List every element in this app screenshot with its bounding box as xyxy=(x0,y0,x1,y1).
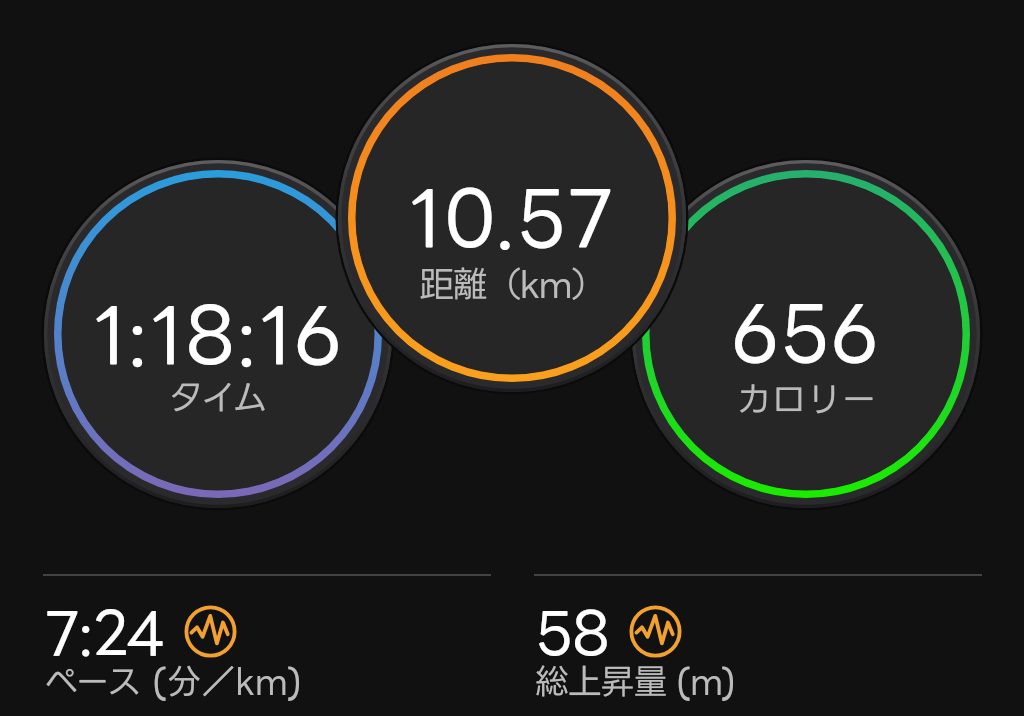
staticText: 58 xyxy=(536,602,610,665)
button[interactable]: Total ascent 58 metres xyxy=(534,574,982,716)
staticText: 総上昇量 (m) xyxy=(535,662,735,699)
button[interactable]: Distance 10.57 km xyxy=(334,40,690,396)
staticText: 10.57 xyxy=(409,177,615,260)
staticText: 656 xyxy=(731,292,881,375)
staticText: タイム xyxy=(168,377,268,415)
staticText: ペース (分／km) xyxy=(44,662,302,699)
staticText: カロリー xyxy=(736,379,877,417)
staticText: 1:18:16 xyxy=(93,294,344,377)
staticText: 7:24 xyxy=(45,602,165,665)
button[interactable]: Calories 656 xyxy=(628,156,984,512)
staticText: 距離（km） xyxy=(419,264,605,302)
button[interactable]: Pace 7:24 per kilometre xyxy=(43,574,491,716)
button[interactable]: Time 1:18:16 xyxy=(40,156,396,512)
